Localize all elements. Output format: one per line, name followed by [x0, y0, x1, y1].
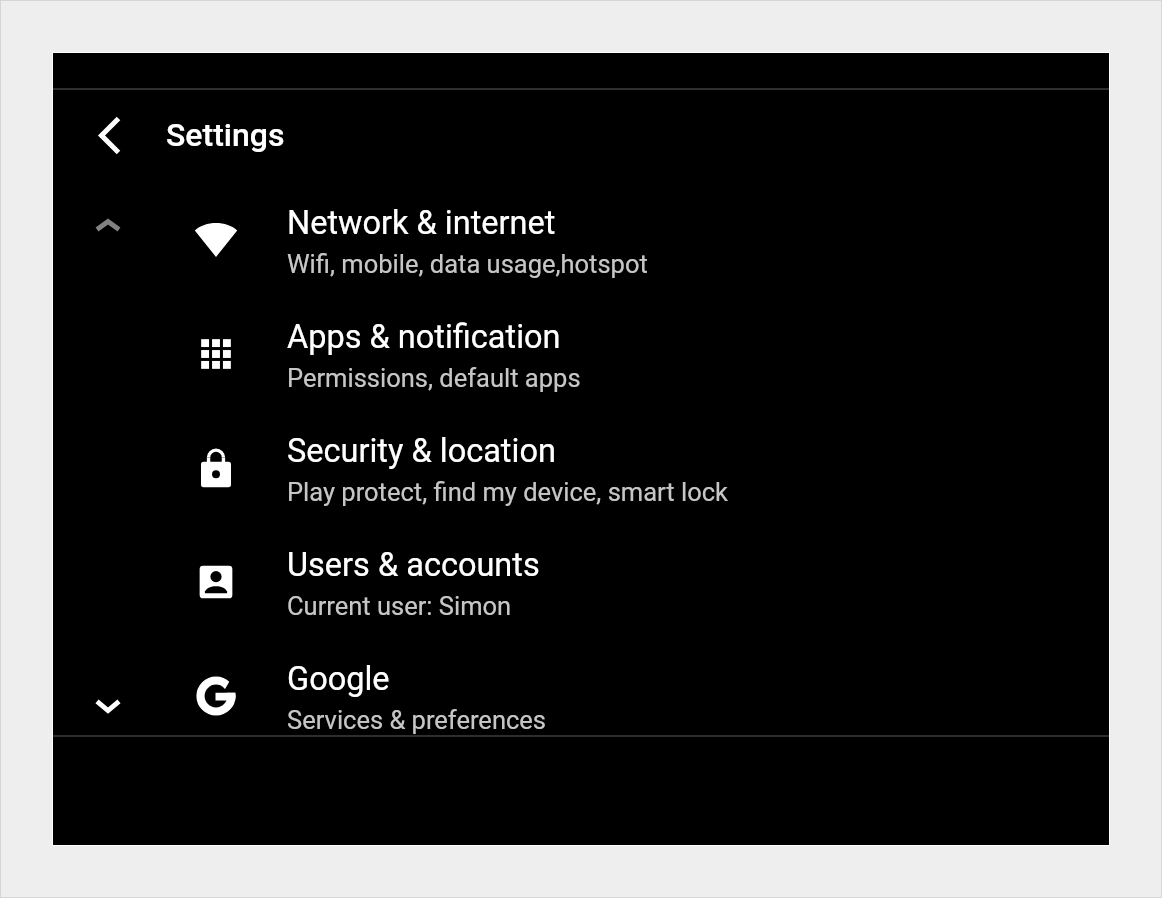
staticText: Wifi, mobile, data usage,hotspot [287, 249, 648, 279]
staticText: Play protect, find my device, smart lock [287, 477, 729, 507]
staticText: Permissions, default apps [287, 363, 581, 393]
button[interactable]: Google [53, 639, 1109, 753]
staticText: Services & preferences [287, 705, 546, 735]
staticText: Users & accounts [287, 546, 540, 584]
button[interactable]: Users & accounts [53, 525, 1109, 639]
button[interactable]: Apps & notification [53, 297, 1109, 411]
staticText: Settings [166, 116, 285, 154]
staticText: Apps & notification [287, 318, 561, 356]
button[interactable]: Scroll down [80, 678, 136, 734]
button[interactable]: Network & internet [53, 183, 1109, 297]
button[interactable]: Security & location [53, 411, 1109, 525]
staticText: Google [287, 660, 390, 698]
button[interactable]: Navigate up [79, 104, 141, 166]
staticText: Security & location [287, 432, 556, 470]
staticText: Network & internet [287, 204, 556, 242]
button[interactable]: Scroll up [80, 197, 136, 253]
staticText: Current user: Simon [287, 591, 512, 621]
